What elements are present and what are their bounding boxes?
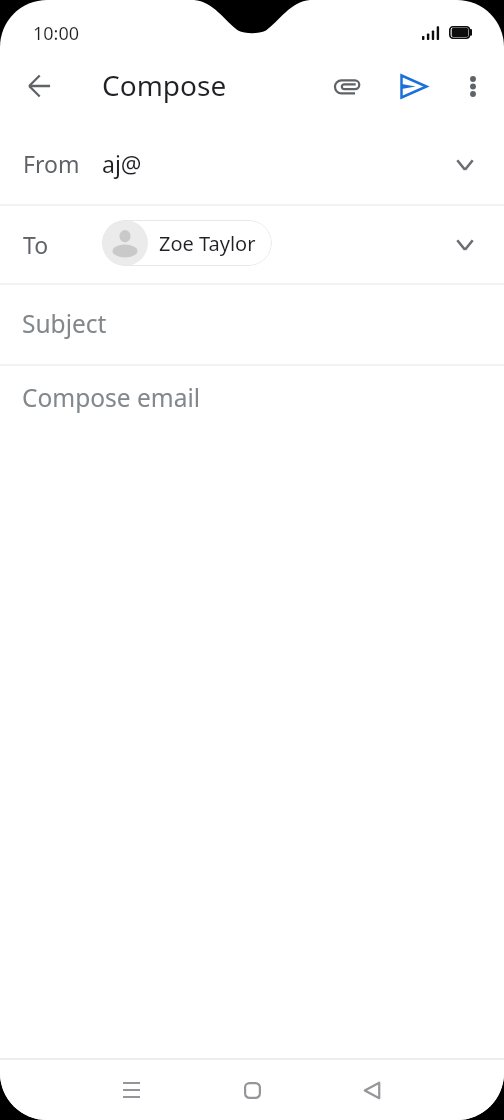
button[interactable]: To	[0, 206, 504, 283]
button[interactable]: Subject	[0, 285, 504, 364]
button[interactable]: Home	[222, 1060, 283, 1120]
button[interactable]: Back	[341, 1060, 402, 1120]
staticText: To	[23, 229, 102, 260]
staticText: Compose	[102, 66, 227, 104]
button[interactable]: Expand From	[440, 140, 490, 190]
staticText: 10:00	[33, 21, 80, 46]
button[interactable]: Expand To	[440, 220, 490, 270]
button[interactable]: Recent apps	[101, 1060, 162, 1120]
button[interactable]: From	[0, 122, 504, 204]
button[interactable]: More options	[447, 60, 499, 112]
staticText: Compose email	[22, 381, 201, 414]
button[interactable]: Send	[387, 59, 441, 113]
button[interactable]: Attach file	[320, 60, 374, 114]
staticText: Zoe Taylor	[159, 230, 256, 257]
button[interactable]: Zoe Taylor	[102, 220, 272, 266]
staticText: Subject	[22, 307, 107, 340]
staticText: From	[23, 148, 102, 179]
button[interactable]: Compose email	[0, 366, 504, 445]
button[interactable]: Back	[11, 58, 67, 114]
staticText: aj@	[102, 148, 142, 179]
